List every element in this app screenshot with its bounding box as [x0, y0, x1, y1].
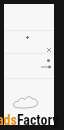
button[interactable]: Status: [4, 54, 54, 78]
staticText: adsFactory: [0, 112, 59, 128]
other: Status: [47, 59, 50, 62]
other: Add: [26, 36, 29, 39]
button[interactable]: Add: [4, 31, 54, 53]
other: Slider: [41, 65, 51, 69]
other: Close: [47, 48, 51, 52]
